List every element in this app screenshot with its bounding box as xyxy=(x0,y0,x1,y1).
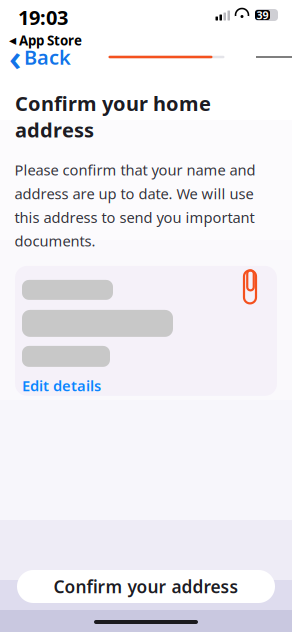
staticText: 39 xyxy=(256,8,268,22)
staticText: 19:03 xyxy=(18,4,68,31)
button[interactable]: Confirm your address xyxy=(17,570,275,603)
staticText: Back xyxy=(24,44,71,70)
staticText: Edit details xyxy=(22,376,101,395)
staticText: ◀ xyxy=(9,35,16,46)
button[interactable]: Edit details xyxy=(22,372,107,399)
staticText: ‹ xyxy=(9,33,21,81)
staticText: App Store xyxy=(19,32,82,49)
staticText: Confirm your address xyxy=(53,575,238,598)
staticText: Please confirm that your name and addres… xyxy=(14,160,255,251)
staticText: Confirm your home address xyxy=(15,90,211,143)
button[interactable]: ‹ xyxy=(0,42,77,72)
